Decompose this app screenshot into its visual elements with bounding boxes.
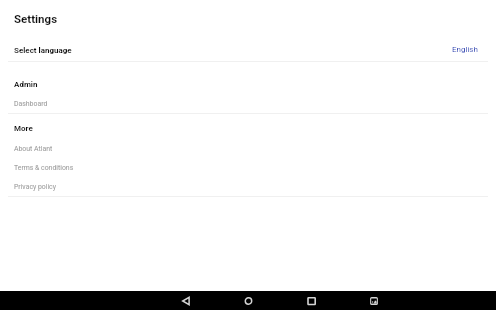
staticText: About Atlant bbox=[14, 145, 53, 153]
staticText: Terms & conditions bbox=[14, 164, 74, 172]
button[interactable]: About Atlant bbox=[0, 141, 496, 156]
button[interactable]: Terms & conditions bbox=[0, 160, 496, 175]
button[interactable]: Recent apps bbox=[291, 291, 333, 310]
button[interactable]: Screenshot bbox=[354, 291, 396, 310]
staticText: Settings bbox=[14, 12, 58, 25]
staticText: More bbox=[14, 124, 33, 133]
staticText: Dashboard bbox=[14, 100, 48, 108]
button[interactable]: Back bbox=[165, 291, 207, 310]
button[interactable]: Home bbox=[228, 291, 270, 310]
button[interactable]: Privacy policy bbox=[0, 179, 496, 194]
staticText: Admin bbox=[14, 80, 38, 89]
staticText: Select language bbox=[14, 46, 72, 55]
button[interactable]: Select language bbox=[0, 44, 496, 59]
staticText: English bbox=[452, 45, 478, 54]
button[interactable]: Dashboard bbox=[0, 96, 496, 111]
staticText: Privacy policy bbox=[14, 183, 56, 191]
